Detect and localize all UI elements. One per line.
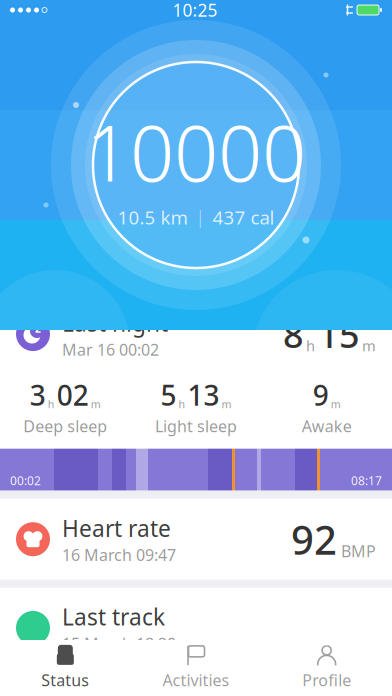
staticText: Profile: [302, 669, 351, 691]
staticText: 5: [160, 376, 176, 413]
staticText: 13: [187, 376, 219, 413]
staticText: 15: [318, 310, 360, 358]
staticText: 3: [30, 376, 46, 413]
staticText: m: [91, 397, 101, 411]
staticText: Mar 16 00:02: [62, 339, 159, 360]
staticText: m: [331, 397, 341, 411]
button[interactable]: Status: [0, 637, 131, 696]
staticText: 9: [313, 376, 329, 413]
staticText: BMP: [341, 540, 376, 562]
staticText: h: [306, 336, 315, 355]
button[interactable]: Activities: [131, 637, 261, 696]
button[interactable]: z: [0, 294, 392, 491]
staticText: Awake: [302, 415, 352, 437]
staticText: m: [362, 336, 376, 355]
staticText: 00:02: [10, 473, 41, 489]
button[interactable]: Heart rate: [0, 499, 392, 580]
staticText: 10.5 km: [117, 205, 187, 230]
staticText: 02: [57, 376, 89, 413]
staticText: Heart rate: [62, 513, 171, 543]
staticText: 15 March 18:20: [62, 633, 176, 654]
staticText: Last track: [62, 602, 165, 632]
button[interactable]: Profile: [261, 637, 392, 696]
staticText: Light sleep: [155, 415, 237, 437]
staticText: 10:25: [172, 0, 217, 21]
staticText: m: [221, 397, 231, 411]
staticText: 08:17: [351, 473, 382, 489]
button[interactable]: Last track: [0, 588, 392, 668]
staticText: |: [195, 206, 204, 229]
staticText: h: [48, 397, 55, 411]
staticText: Deep sleep: [23, 415, 107, 437]
staticText: 92: [291, 513, 337, 566]
staticText: 8: [283, 310, 304, 358]
staticText: 16 March 09:47: [62, 544, 176, 565]
staticText: 10000: [86, 100, 306, 203]
staticText: 437 cal: [212, 205, 274, 230]
staticText: z: [35, 320, 41, 336]
staticText: Last night: [62, 308, 168, 338]
staticText: Activities: [162, 669, 229, 691]
staticText: h: [178, 397, 185, 411]
staticText: Status: [41, 669, 89, 691]
